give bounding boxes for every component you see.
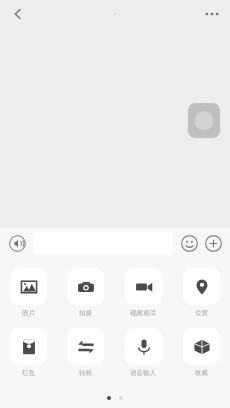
button[interactable]: More functions <box>201 231 225 255</box>
button[interactable]: 红包 <box>0 327 57 378</box>
button[interactable]: 照片 <box>0 267 57 318</box>
button[interactable]: 视频通话 <box>114 267 172 318</box>
button[interactable]: Voice message <box>5 231 29 255</box>
staticText: 照片 <box>22 309 35 317</box>
button[interactable]: 位置 <box>172 267 230 318</box>
staticText: 转账 <box>79 369 92 377</box>
button[interactable]: 转账 <box>57 327 114 378</box>
staticText: 红包 <box>22 369 35 377</box>
staticText: 视频通话 <box>130 309 156 317</box>
button[interactable]: More options <box>200 2 224 26</box>
button[interactable]: Emoji <box>177 231 201 255</box>
staticText: 收藏 <box>195 369 208 377</box>
button[interactable]: 收藏 <box>172 327 230 378</box>
staticText: 位置 <box>195 309 208 317</box>
button[interactable] <box>188 103 220 138</box>
button[interactable]: 语音输入 <box>114 327 172 378</box>
staticText: 语音输入 <box>130 369 156 377</box>
button[interactable]: 拍摄 <box>57 267 114 318</box>
staticText: 拍摄 <box>79 309 92 317</box>
button[interactable]: Back <box>6 2 30 26</box>
